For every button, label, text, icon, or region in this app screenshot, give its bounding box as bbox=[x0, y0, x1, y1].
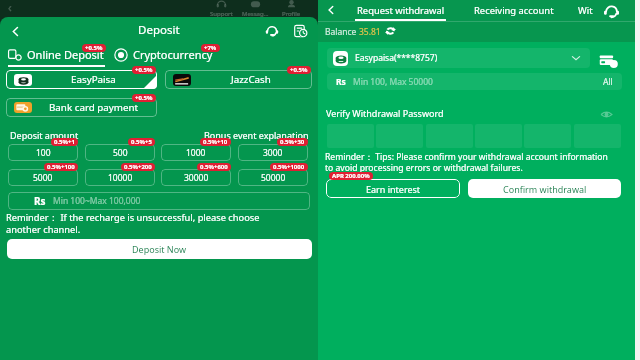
staticText: 0.5%+30 bbox=[280, 138, 305, 146]
button[interactable]: 5000 bbox=[8, 169, 78, 186]
button[interactable]: Back bbox=[4, 20, 26, 42]
button[interactable]: Manage bank cards bbox=[597, 49, 619, 71]
button[interactable]: 1000 bbox=[161, 144, 231, 161]
staticText: 35.81 bbox=[359, 26, 381, 38]
staticText: Reminder： If the recharge is unsuccessfu… bbox=[6, 211, 260, 236]
staticText: 0.5%+10 bbox=[203, 138, 228, 146]
button[interactable]: Earn interest bbox=[326, 179, 460, 198]
staticText: Cryptocurrency bbox=[133, 47, 213, 62]
button[interactable]: 50000 bbox=[238, 169, 308, 186]
staticText: Receiving account bbox=[474, 4, 554, 17]
staticText: Support bbox=[210, 10, 233, 18]
staticText: 0.5%+1 bbox=[54, 138, 75, 146]
button[interactable]: JazzCash bbox=[165, 70, 312, 89]
staticText: 3000 bbox=[263, 147, 283, 159]
button[interactable]: Confirm withdrawal bbox=[468, 179, 621, 198]
staticText: Bonus event explanation bbox=[204, 129, 309, 141]
staticText: ‹ bbox=[8, 0, 12, 15]
staticText: Reminder： Tips: Please confirm your with… bbox=[325, 151, 608, 173]
staticText: Wit bbox=[578, 4, 593, 17]
staticText: Request withdrawal bbox=[357, 4, 445, 17]
staticText: Rs bbox=[34, 194, 46, 208]
button[interactable]: Rs bbox=[327, 73, 622, 90]
button[interactable]: Receiving account bbox=[474, 0, 554, 20]
staticText: Easypaisa(****8757) bbox=[355, 52, 438, 64]
button[interactable]: Deposit Now bbox=[7, 239, 312, 259]
staticText: Min 100, Max 50000 bbox=[353, 76, 433, 88]
button[interactable]: 10000 bbox=[85, 169, 155, 186]
staticText: Earn interest bbox=[366, 183, 421, 195]
staticText: 1000 bbox=[186, 147, 206, 159]
staticText: APR 200.00% bbox=[332, 172, 370, 180]
button[interactable]: Online Deposit bbox=[8, 47, 104, 62]
staticText: Verify Withdrawal Password bbox=[326, 107, 444, 119]
button[interactable]: EasyPaisa bbox=[6, 70, 157, 89]
button[interactable]: Wit bbox=[578, 0, 593, 20]
staticText: All bbox=[603, 76, 613, 88]
staticText: Balance bbox=[325, 26, 359, 38]
staticText: +0.5% bbox=[290, 66, 308, 74]
staticText: 100 bbox=[36, 147, 51, 159]
staticText: Bank card payment bbox=[49, 101, 139, 114]
staticText: +0.5% bbox=[135, 94, 153, 102]
button[interactable]: 3000 bbox=[238, 144, 308, 161]
staticText: Rs bbox=[336, 76, 346, 88]
button[interactable]: 500 bbox=[85, 144, 155, 161]
button[interactable]: Rs bbox=[8, 192, 310, 210]
staticText: Deposit bbox=[138, 22, 180, 38]
button[interactable]: Show password bbox=[600, 108, 613, 121]
staticText: 500 bbox=[113, 147, 128, 159]
staticText: +0.5% bbox=[85, 44, 103, 52]
staticText: 5000 bbox=[33, 172, 53, 184]
staticText: Deposit amount bbox=[10, 129, 79, 141]
staticText: Deposit Now bbox=[132, 243, 187, 255]
staticText: 50000 bbox=[261, 172, 286, 184]
staticText: 30000 bbox=[184, 172, 209, 184]
staticText: EasyPaisa bbox=[71, 73, 116, 86]
staticText: 0.5%+600 bbox=[200, 163, 228, 171]
button[interactable]: Refresh balance bbox=[385, 27, 396, 38]
button[interactable]: 30000 bbox=[161, 169, 231, 186]
staticText: 0.5%+100 bbox=[47, 163, 75, 171]
staticText: JazzCash bbox=[231, 73, 271, 86]
button[interactable]: 100 bbox=[8, 144, 78, 161]
button[interactable]: Customer support bbox=[601, 1, 621, 21]
staticText: 10000 bbox=[108, 172, 133, 184]
staticText: +7% bbox=[204, 44, 217, 52]
staticText: +0.5% bbox=[135, 66, 153, 74]
staticText: Confirm withdrawal bbox=[503, 183, 587, 195]
staticText: 0.5%+5 bbox=[131, 138, 152, 146]
button[interactable]: Easypaisa(****8757) bbox=[327, 48, 590, 68]
button[interactable]: Bank card payment bbox=[6, 98, 157, 117]
staticText: 0.5%+1000 bbox=[273, 163, 305, 171]
button[interactable]: Back bbox=[322, 1, 340, 19]
staticText: Min 100~Max 100,000 bbox=[53, 195, 141, 207]
staticText: Online Deposit bbox=[27, 47, 104, 62]
staticText: Profile bbox=[282, 10, 301, 18]
staticText: 0.5%+200 bbox=[124, 163, 152, 171]
button[interactable]: Cryptocurrency bbox=[114, 47, 213, 62]
button[interactable]: Order history bbox=[292, 22, 309, 39]
button[interactable]: Support bbox=[263, 22, 280, 39]
button[interactable]: Request withdrawal bbox=[357, 0, 445, 20]
staticText: Messag… bbox=[242, 10, 269, 18]
